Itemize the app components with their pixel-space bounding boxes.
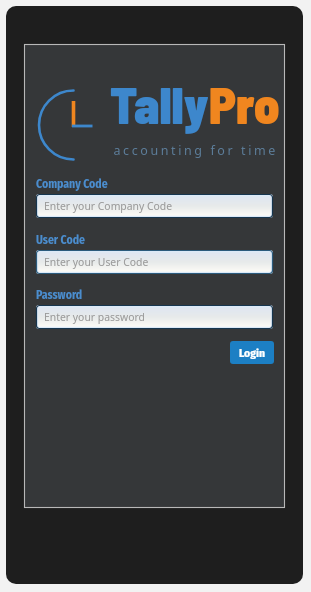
button[interactable]: Login: [230, 341, 274, 364]
staticText: accounting for time: [107, 142, 278, 159]
staticText: Password: [36, 288, 83, 302]
staticText: Login: [239, 346, 265, 360]
button[interactable]: Enter your User Code: [36, 250, 273, 274]
other: TallyPro clock logo: [36, 86, 96, 166]
staticText: Company Code: [36, 177, 108, 191]
staticText: Enter your password: [44, 310, 145, 324]
button[interactable]: Enter your Company Code: [36, 194, 273, 218]
staticText: Enter your Company Code: [44, 199, 173, 213]
button[interactable]: Enter your password: [36, 305, 273, 329]
staticText: User Code: [36, 233, 85, 247]
staticText: Pro: [209, 74, 280, 134]
staticText: Enter your User Code: [44, 255, 149, 269]
staticText: Tally: [110, 74, 209, 134]
